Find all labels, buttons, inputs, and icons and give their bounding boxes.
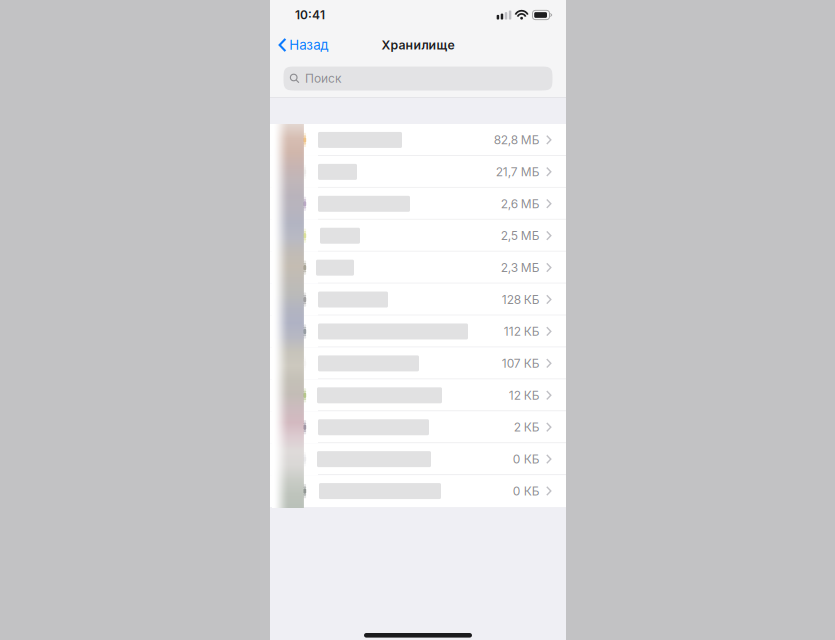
button[interactable]: 2,6 МБ <box>270 188 566 220</box>
staticText: 0 КБ <box>513 484 540 498</box>
staticText: 12 КБ <box>509 388 540 403</box>
button[interactable]: Назад <box>270 30 336 60</box>
button[interactable]: 2 КБ <box>270 411 566 443</box>
button[interactable]: 21,7 МБ <box>270 156 566 188</box>
button[interactable]: 2,5 МБ <box>270 220 566 252</box>
staticText: Назад <box>289 37 328 53</box>
staticText: 10:41 <box>295 8 325 22</box>
staticText: 82,8 МБ <box>494 133 540 147</box>
button[interactable]: 107 КБ <box>270 347 566 379</box>
button[interactable]: 12 КБ <box>270 379 566 411</box>
button[interactable]: 0 КБ <box>270 443 566 475</box>
staticText: 2,5 МБ <box>501 228 540 243</box>
staticText: Поиск <box>305 71 342 86</box>
staticText: 21,7 МБ <box>496 165 540 179</box>
staticText: 2 КБ <box>514 420 540 434</box>
staticText: 2,6 МБ <box>501 196 540 211</box>
staticText: 2,3 МБ <box>501 260 540 275</box>
staticText: 107 КБ <box>502 356 540 371</box>
staticText: 112 КБ <box>504 324 540 339</box>
button[interactable]: 112 КБ <box>270 315 566 347</box>
staticText: Хранилище <box>381 38 454 52</box>
button[interactable]: 2,3 МБ <box>270 252 566 284</box>
button[interactable]: 128 КБ <box>270 284 566 315</box>
staticText: 128 КБ <box>502 292 540 307</box>
button[interactable]: 0 КБ <box>270 475 566 507</box>
button[interactable]: Поиск <box>283 66 552 90</box>
button[interactable]: 82,8 МБ <box>270 124 566 156</box>
staticText: 0 КБ <box>513 452 540 466</box>
